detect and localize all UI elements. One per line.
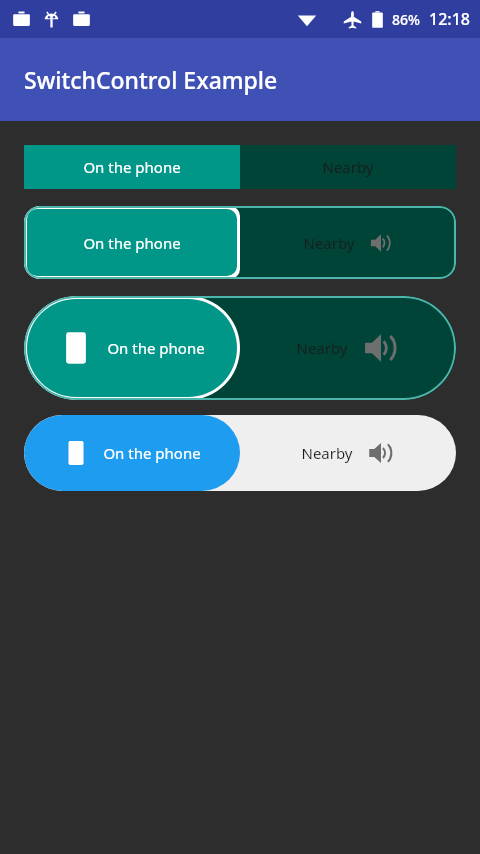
other: Phone (63, 440, 89, 466)
staticText: On the phone (83, 233, 181, 253)
other: Volume (362, 329, 400, 367)
button[interactable]: Nearby (24, 415, 456, 491)
other: Phone (59, 331, 93, 365)
staticText: Nearby (296, 338, 348, 358)
staticText: On the phone (103, 443, 201, 463)
button[interactable]: On the phone (27, 209, 237, 276)
other: Volume (369, 231, 393, 255)
staticText: 86% (392, 10, 420, 29)
button[interactable]: Phone (27, 299, 237, 397)
staticText: On the phone (83, 157, 181, 177)
staticText: SwitchControl Example (24, 64, 278, 95)
button[interactable]: Phone (24, 415, 240, 491)
button[interactable]: Nearby (24, 145, 456, 189)
staticText: 12:18 (429, 8, 470, 30)
staticText: Nearby (322, 157, 374, 177)
button[interactable]: Nearby (24, 206, 456, 279)
button[interactable]: Nearby (24, 296, 456, 400)
other: Volume (367, 439, 395, 467)
staticText: Nearby (301, 443, 353, 463)
staticText: Nearby (303, 233, 355, 253)
staticText: On the phone (107, 338, 205, 358)
button[interactable]: On the phone (24, 145, 240, 189)
